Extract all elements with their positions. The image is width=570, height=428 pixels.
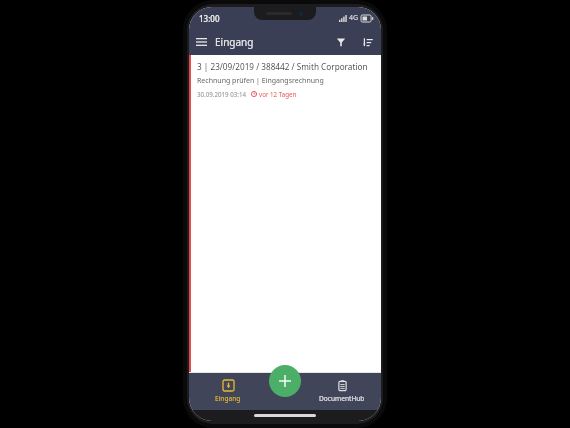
button[interactable]: Sort: [357, 30, 379, 54]
staticText: 13:00: [199, 13, 220, 24]
staticText: 4G: [349, 13, 359, 23]
button[interactable]: Add: [269, 365, 301, 397]
staticText: Eingang: [215, 35, 254, 49]
staticText: Eingang: [215, 394, 241, 403]
button[interactable]: Eingang: [189, 373, 267, 410]
staticText: Rechnung prüfen | Eingangsrechnung: [197, 76, 324, 86]
button[interactable]: 3 | 23/09/2019 / 388442 / Smith Corporat…: [189, 55, 381, 373]
staticText: vor 12 Tagen: [259, 90, 297, 98]
button[interactable]: DocumentHub: [303, 373, 381, 410]
staticText: 3 | 23/09/2019 / 388442 / Smith Corporat…: [197, 61, 368, 72]
staticText: DocumentHub: [319, 394, 365, 403]
button[interactable]: Menu: [189, 30, 213, 54]
staticText: 30.09.2019 03:14: [197, 90, 247, 98]
button[interactable]: Filter: [329, 30, 353, 54]
